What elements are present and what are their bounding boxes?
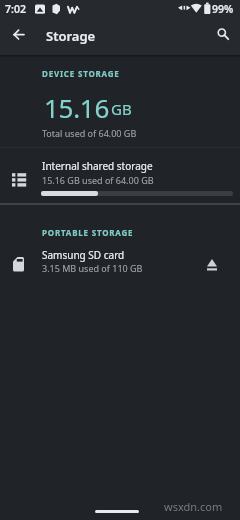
staticText: Total used of 64.00 GB bbox=[42, 127, 137, 139]
staticText: 7:02 bbox=[5, 2, 26, 16]
button[interactable]: Samsung SD card bbox=[0, 242, 240, 284]
staticText: GB bbox=[111, 99, 132, 119]
staticText: PORTABLE STORAGE bbox=[42, 227, 134, 238]
staticText: 15.16 GB used of 64.00 GB bbox=[42, 174, 154, 186]
staticText: 15.16 bbox=[44, 90, 109, 125]
staticText: Internal shared storage bbox=[42, 159, 153, 173]
button[interactable] bbox=[7, 24, 31, 48]
staticText: 99% bbox=[212, 2, 234, 16]
staticText: 3.15 MB used of 110 GB bbox=[42, 262, 143, 274]
staticText: DEVICE STORAGE bbox=[42, 68, 120, 79]
staticText: wsxdn.com bbox=[164, 499, 223, 514]
staticText: Storage bbox=[46, 27, 96, 45]
button[interactable] bbox=[210, 23, 234, 47]
button[interactable]: Internal shared storage bbox=[0, 150, 240, 203]
staticText: Samsung SD card bbox=[42, 248, 125, 262]
button[interactable] bbox=[196, 245, 228, 277]
